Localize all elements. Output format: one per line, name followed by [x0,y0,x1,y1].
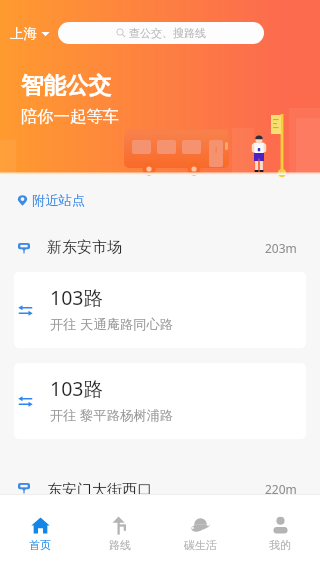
staticText: 上海 [10,25,37,42]
staticText: 103路 [50,284,103,311]
button[interactable]: 路线 [80,516,160,569]
button[interactable]: 我的 [240,516,320,569]
button[interactable]: 东安门大街西口 [0,481,320,494]
staticText: 首页 [29,538,51,552]
staticText: 新东安市场 [47,238,122,257]
staticText: 103路 [50,375,103,402]
staticText: 东安门大街西口 [47,481,152,494]
button[interactable]: 103路 [14,363,306,439]
staticText: 203m [265,240,297,256]
button[interactable]: 查公交、搜路线 [58,22,264,44]
staticText: 我的 [269,538,291,552]
staticText: 附近站点 [32,192,86,209]
staticText: 陪你一起等车 [21,106,119,127]
button[interactable]: 碳生活 [160,516,240,569]
button[interactable]: 新东安市场 [0,225,320,270]
staticText: 开往 黎平路杨树浦路 [50,406,174,424]
staticText: 路线 [109,538,131,552]
staticText: 220m [265,481,297,494]
staticText: 智能公交 [21,71,111,99]
button[interactable]: 上海 [8,22,52,44]
staticText: 查公交、搜路线 [129,26,206,40]
button[interactable]: 103路 [14,272,306,348]
staticText: 开往 天通庵路同心路 [50,315,174,333]
staticText: 碳生活 [184,538,217,552]
button[interactable]: 首页 [0,516,80,569]
